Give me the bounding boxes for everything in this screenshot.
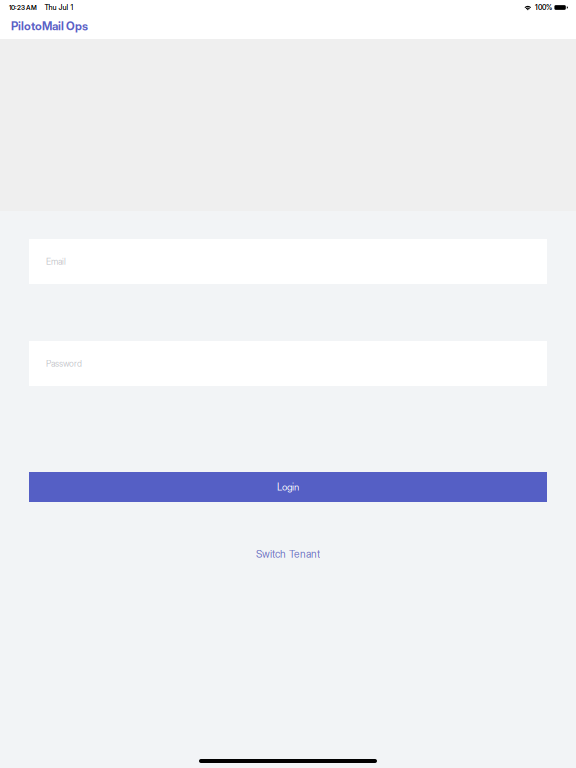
staticText: 10:23 AM — [9, 3, 37, 11]
staticText: Login — [277, 481, 299, 493]
staticText: Thu Jul 1 — [44, 3, 73, 12]
staticText: Email — [46, 256, 66, 267]
staticText: Password — [46, 358, 82, 369]
button[interactable]: Login — [29, 472, 547, 502]
staticText: 100% — [535, 3, 552, 12]
staticText: Switch Tenant — [256, 548, 320, 560]
button[interactable]: Switch Tenant — [29, 544, 547, 564]
staticText: PilotoMail Ops — [11, 19, 88, 33]
